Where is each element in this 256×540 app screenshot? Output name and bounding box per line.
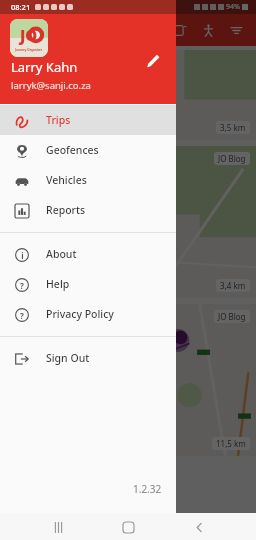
staticText: Help: [46, 277, 70, 291]
staticText: larryk@sanji.co.za: [11, 79, 91, 92]
staticText: Journey Organiser: [15, 48, 43, 52]
button[interactable]: i: [0, 239, 176, 269]
staticText: 3,4 km: [220, 280, 246, 291]
staticText: 94%: [226, 2, 240, 12]
staticText: JO Blog: [218, 153, 246, 164]
staticText: Privacy Policy: [46, 307, 114, 321]
button[interactable]: Trips: [0, 105, 176, 135]
staticText: i: [21, 250, 24, 261]
staticText: ?: [20, 280, 24, 291]
staticText: GALLO MANOR: [6, 212, 33, 232]
button[interactable]: Reports: [0, 195, 176, 225]
staticText: JO: [20, 25, 38, 45]
staticText: ©Mapbox, © OpenStreetMap: [2, 290, 71, 297]
button[interactable]: Filter: [222, 16, 250, 44]
staticText: 1.2.32: [133, 482, 162, 496]
staticText: ©Mapbox, © OpenStreetMap: [2, 132, 71, 139]
staticText: Vehicles: [46, 173, 87, 187]
staticText: Trips: [46, 113, 71, 127]
staticText: ?: [20, 310, 24, 321]
staticText: Sign Out: [46, 351, 90, 365]
button[interactable]: Vehicles: [0, 165, 176, 195]
staticText: 3,5 km: [220, 122, 246, 133]
staticText: 08:21: [11, 2, 31, 12]
button[interactable]: ?: [0, 299, 176, 329]
staticText: About: [46, 247, 77, 261]
staticText: 11,5 km: [216, 438, 246, 449]
button[interactable]: Trips: [194, 16, 222, 44]
button[interactable]: Back: [186, 514, 212, 540]
staticText: Geofences: [46, 143, 99, 157]
staticText: Reports: [46, 203, 86, 217]
staticText: Larry Kahn: [11, 58, 78, 76]
button[interactable]: Edit profile: [138, 46, 168, 76]
button[interactable]: Home: [115, 514, 141, 540]
button[interactable]: Sign Out: [0, 343, 176, 373]
button[interactable]: Geofences: [0, 135, 176, 165]
button[interactable]: Recents: [45, 514, 71, 540]
button[interactable]: Cards: [166, 16, 194, 44]
staticText: JO Blog: [218, 311, 246, 322]
button[interactable]: ?: [0, 269, 176, 299]
